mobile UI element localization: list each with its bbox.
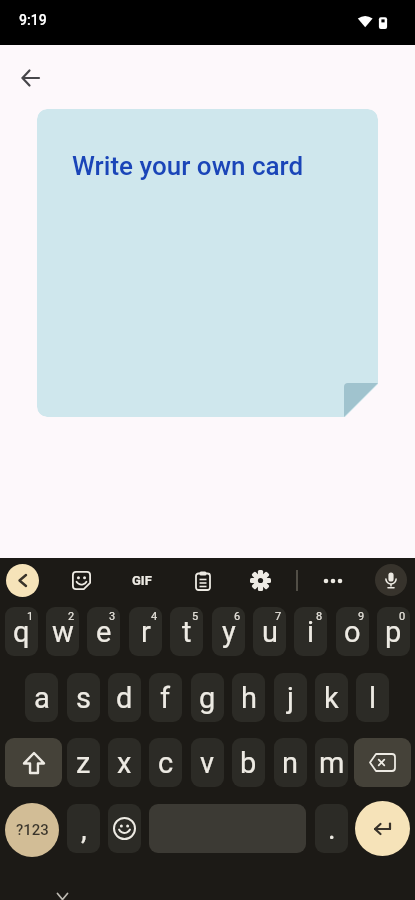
staticText: 7 bbox=[275, 610, 282, 623]
button[interactable]: GIF bbox=[124, 563, 160, 598]
staticText: e bbox=[96, 615, 112, 649]
staticText: m bbox=[319, 746, 345, 780]
button[interactable] bbox=[243, 563, 278, 598]
button[interactable]: Write your own card bbox=[37, 109, 378, 417]
staticText: , bbox=[81, 812, 87, 846]
staticText: l bbox=[369, 681, 377, 715]
button[interactable]: k bbox=[315, 673, 348, 722]
button[interactable] bbox=[6, 564, 39, 597]
button[interactable]: g bbox=[191, 673, 224, 722]
button[interactable] bbox=[375, 564, 407, 596]
button[interactable]: p bbox=[377, 607, 410, 656]
staticText: w bbox=[52, 615, 74, 649]
staticText: GIF bbox=[132, 573, 152, 588]
staticText: 5 bbox=[192, 610, 199, 623]
staticText: v bbox=[200, 746, 215, 780]
staticText: 6 bbox=[234, 610, 241, 623]
button[interactable]: l bbox=[356, 673, 389, 722]
button[interactable]: n bbox=[274, 738, 307, 787]
button[interactable] bbox=[12, 60, 48, 96]
staticText: g bbox=[199, 681, 216, 715]
staticText: Write your own card bbox=[72, 151, 304, 181]
button[interactable] bbox=[354, 738, 411, 787]
staticText: a bbox=[34, 681, 50, 715]
button[interactable]: y bbox=[212, 607, 245, 656]
staticText: n bbox=[282, 746, 299, 780]
staticText: s bbox=[76, 681, 91, 715]
staticText: 8 bbox=[316, 610, 323, 623]
button[interactable]: z bbox=[67, 738, 100, 787]
staticText: q bbox=[13, 615, 30, 649]
staticText: 4 bbox=[151, 610, 158, 623]
staticText: i bbox=[307, 615, 315, 649]
button[interactable]: c bbox=[149, 738, 182, 787]
button[interactable]: q bbox=[5, 607, 38, 656]
staticText: u bbox=[262, 615, 278, 649]
button[interactable]: m bbox=[315, 738, 348, 787]
staticText: 0 bbox=[399, 610, 406, 623]
button[interactable] bbox=[149, 804, 306, 853]
button[interactable]: o bbox=[336, 607, 369, 656]
button[interactable]: d bbox=[108, 673, 141, 722]
button[interactable] bbox=[108, 804, 141, 853]
button[interactable] bbox=[5, 738, 62, 787]
button[interactable]: ?123 bbox=[5, 803, 59, 857]
button[interactable]: t bbox=[170, 607, 203, 656]
staticText: 1 bbox=[27, 610, 34, 623]
staticText: k bbox=[324, 681, 339, 715]
button[interactable] bbox=[185, 563, 220, 598]
button[interactable]: v bbox=[191, 738, 224, 787]
button[interactable]: i bbox=[294, 607, 327, 656]
staticText: y bbox=[222, 615, 236, 649]
staticText: o bbox=[344, 615, 361, 649]
button[interactable]: u bbox=[253, 607, 286, 656]
staticText: f bbox=[160, 681, 171, 715]
button[interactable]: f bbox=[149, 673, 182, 722]
staticText: 9 bbox=[358, 610, 365, 623]
staticText: r bbox=[141, 615, 151, 649]
button[interactable]: a bbox=[25, 673, 58, 722]
button[interactable]: r bbox=[129, 607, 162, 656]
button[interactable]: . bbox=[315, 804, 348, 853]
button[interactable]: b bbox=[232, 738, 265, 787]
staticText: c bbox=[158, 746, 174, 780]
staticText: d bbox=[116, 681, 133, 715]
button[interactable]: j bbox=[274, 673, 307, 722]
staticText: p bbox=[385, 615, 402, 649]
staticText: ?123 bbox=[16, 821, 49, 839]
button[interactable] bbox=[64, 563, 99, 598]
staticText: z bbox=[76, 746, 91, 780]
button[interactable]: e bbox=[87, 607, 120, 656]
button[interactable]: w bbox=[46, 607, 79, 656]
button[interactable]: s bbox=[67, 673, 100, 722]
staticText: t bbox=[182, 615, 192, 649]
staticText: b bbox=[240, 746, 257, 780]
button[interactable] bbox=[355, 801, 410, 856]
staticText: x bbox=[117, 746, 132, 780]
button[interactable]: h bbox=[232, 673, 265, 722]
button[interactable]: , bbox=[67, 804, 100, 853]
staticText: j bbox=[287, 681, 294, 715]
staticText: 3 bbox=[109, 610, 116, 623]
button[interactable]: x bbox=[108, 738, 141, 787]
staticText: h bbox=[241, 681, 257, 715]
staticText: 9:19 bbox=[19, 12, 47, 28]
button[interactable] bbox=[315, 563, 350, 598]
staticText: . bbox=[328, 812, 336, 846]
staticText: 2 bbox=[68, 610, 75, 623]
